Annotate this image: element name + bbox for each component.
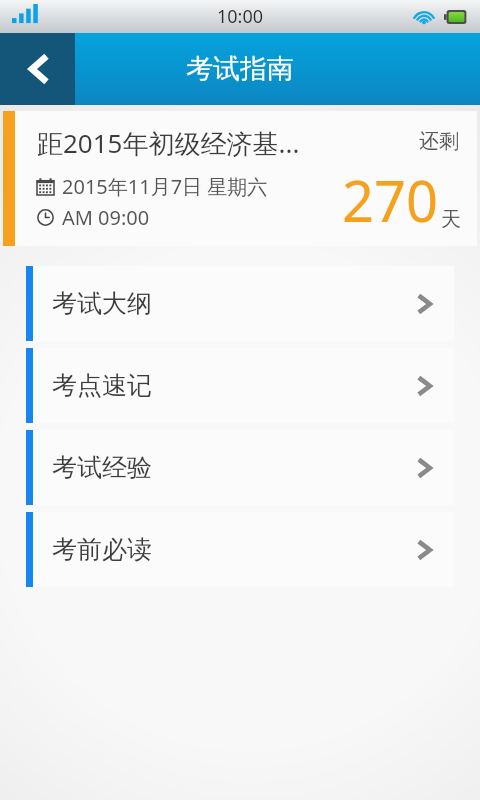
staticText: 考试大纲	[52, 288, 152, 319]
staticText: 2015年11月7日 星期六	[62, 173, 268, 200]
staticText: 考试经验	[52, 452, 152, 483]
staticText: 考试指南	[186, 52, 294, 86]
button[interactable]: 考点速记	[26, 348, 454, 423]
staticText: 距2015年初级经济基...	[37, 125, 300, 161]
staticText: AM 09:00	[62, 204, 150, 231]
button[interactable]: 考前必读	[26, 512, 454, 587]
staticText: 270	[342, 162, 439, 238]
staticText: 考前必读	[52, 534, 152, 565]
button[interactable]: Back	[0, 33, 75, 105]
staticText: 10:00	[217, 4, 264, 29]
staticText: 还剩	[419, 129, 459, 154]
button[interactable]: 考试经验	[26, 430, 454, 505]
staticText: 考点速记	[52, 370, 152, 401]
button[interactable]: 考试大纲	[26, 266, 454, 341]
staticText: 天	[441, 207, 461, 232]
